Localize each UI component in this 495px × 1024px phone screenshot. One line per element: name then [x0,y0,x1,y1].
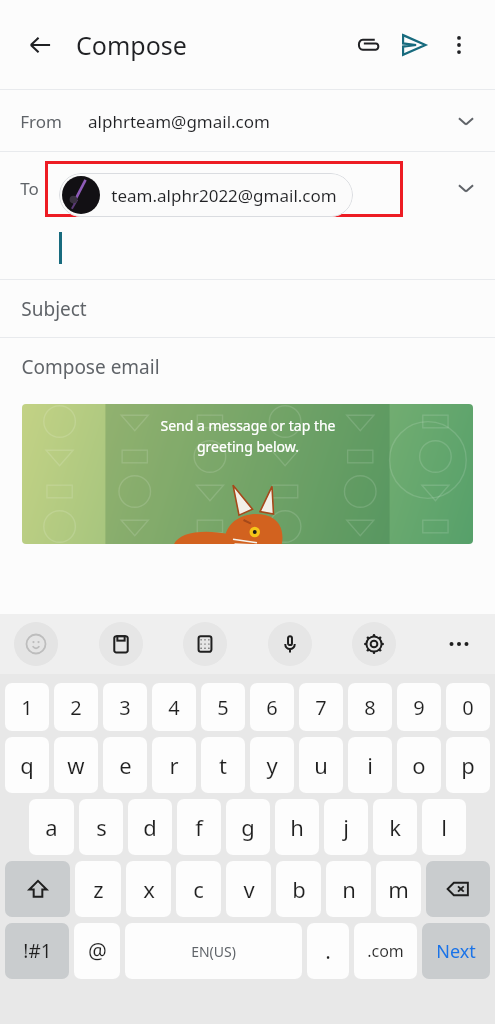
button[interactable]: 4 [152,683,196,731]
staticText: Subject [21,296,87,322]
staticText: c [193,874,204,904]
button[interactable]: More keyboard options [437,622,481,666]
button[interactable]: More options [437,23,481,67]
button[interactable]: z [75,861,121,917]
button[interactable]: Send [391,22,437,68]
button[interactable]: b [276,861,321,917]
button[interactable]: f [177,799,221,855]
staticText: Compose email [21,354,160,380]
button[interactable]: 5 [201,683,245,731]
staticText: Send a message or tap the [160,416,336,435]
staticText: t [219,750,227,780]
button[interactable]: team.alphr2022@gmail.com [59,173,353,217]
staticText: l [441,812,447,842]
button[interactable]: u [299,737,343,793]
staticText: 3 [119,694,131,721]
button[interactable]: Compose email [0,338,495,396]
button[interactable]: s [79,799,123,855]
staticText: 0 [462,694,474,721]
staticText: h [290,812,304,842]
button[interactable]: . [307,923,349,979]
button[interactable]: n [326,861,371,917]
button[interactable]: d [128,799,172,855]
button[interactable]: a [29,799,74,855]
staticText: n [342,874,356,904]
staticText: f [195,812,203,842]
button[interactable]: 0 [446,683,490,731]
button[interactable]: w [54,737,98,793]
button[interactable]: 3 [103,683,147,731]
button[interactable]: Backspace [426,861,490,917]
button[interactable]: p [446,737,490,793]
staticText: v [243,874,255,904]
staticText: r [169,750,179,780]
button[interactable]: Voice input [268,622,312,666]
staticText: p [461,750,475,780]
button[interactable]: From [0,90,495,152]
button[interactable]: i [348,737,392,793]
button[interactable]: Numeric keypad [183,622,227,666]
button[interactable]: x [126,861,171,917]
staticText: e [119,750,132,780]
button[interactable]: y [250,737,294,793]
button[interactable]: Settings [352,622,396,666]
staticText: i [367,750,373,780]
staticText: From [20,110,62,133]
button[interactable]: 8 [348,683,392,731]
button[interactable]: Next [422,923,490,979]
staticText: k [389,812,401,842]
button[interactable]: Send a message or tap the [22,404,473,544]
staticText: u [314,750,328,780]
staticText: Next [436,939,476,964]
button[interactable]: 9 [397,683,441,731]
button[interactable]: .com [354,923,417,979]
button[interactable]: @ [74,923,120,979]
staticText: g [241,812,255,842]
staticText: .com [367,940,404,962]
button[interactable]: k [373,799,417,855]
staticText: . [325,937,331,966]
staticText: Compose [76,28,187,62]
button[interactable]: 1 [5,683,49,731]
button[interactable]: t [201,737,245,793]
button[interactable]: 7 [299,683,343,731]
button[interactable]: Emoji [14,622,58,666]
button[interactable]: h [275,799,319,855]
staticText: z [93,874,104,904]
button[interactable]: Back [18,23,62,67]
staticText: !#1 [23,938,52,964]
staticText: @ [88,937,107,966]
button[interactable]: o [397,737,441,793]
staticText: 2 [70,694,82,721]
button[interactable]: 2 [54,683,98,731]
staticText: 6 [266,694,278,721]
button[interactable]: Subject [0,280,495,338]
staticText: 7 [315,694,327,721]
button[interactable]: Shift [5,861,70,917]
staticText: d [143,812,157,842]
button[interactable]: Clipboard [99,622,143,666]
button[interactable]: 6 [250,683,294,731]
staticText: 5 [217,694,229,721]
staticText: x [143,874,155,904]
staticText: w [67,750,85,780]
staticText: y [266,750,278,780]
button[interactable]: Attach file [345,22,391,68]
staticText: m [388,874,409,904]
staticText: greeting below. [197,437,299,456]
button[interactable]: EN(US) [125,923,302,979]
button[interactable]: g [226,799,270,855]
button[interactable]: e [103,737,147,793]
staticText: team.alphr2022@gmail.com [111,184,337,207]
button[interactable]: r [152,737,196,793]
button[interactable]: l [422,799,466,855]
button[interactable]: c [176,861,221,917]
staticText: 8 [364,694,376,721]
button[interactable]: v [226,861,271,917]
staticText: q [20,750,34,780]
button[interactable]: j [324,799,368,855]
button[interactable]: m [376,861,421,917]
staticText: b [292,874,306,904]
button[interactable]: !#1 [5,923,69,979]
button[interactable]: q [5,737,49,793]
